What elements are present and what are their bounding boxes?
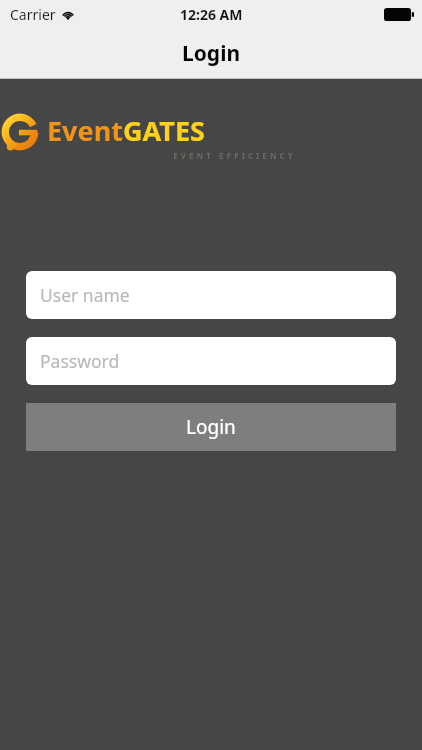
staticText: Event [47,112,123,149]
other: EventGATES logo [0,112,40,152]
button[interactable]: User name [26,271,396,319]
other: Battery full [384,8,414,21]
staticText: 12:26 AM [180,5,243,24]
staticText: User name [40,283,130,307]
staticText: Password [40,349,120,373]
staticText: GATES [123,112,205,149]
button[interactable]: Password [26,337,396,385]
button[interactable]: Login [26,403,396,451]
other: Wi-Fi signal [61,9,75,20]
staticText: Login [182,39,241,68]
staticText: EVENT EFFICIENCY [47,150,422,161]
staticText: Login [186,414,236,440]
staticText: Carrier [10,5,56,24]
